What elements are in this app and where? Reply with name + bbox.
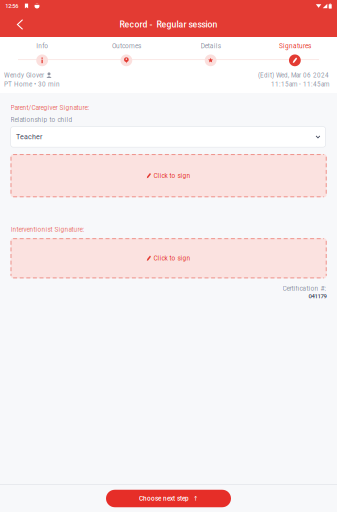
staticText: Signatures [279, 42, 311, 50]
staticText: Info [36, 42, 48, 50]
staticText: PT Home • 30 min [4, 81, 60, 88]
staticText: Wendy Glover [4, 72, 44, 79]
button[interactable]: Back [9, 12, 31, 37]
button[interactable]: Click to sign [11, 238, 327, 278]
button[interactable]: Signatures [279, 42, 311, 66]
staticText: 12:56 [5, 3, 18, 9]
staticText: 11:15am - 11:45am [271, 81, 329, 88]
staticText: Choose next step ↑ [139, 495, 198, 502]
staticText: Parent/Caregiver Signature: [11, 104, 90, 111]
button[interactable]: Teacher [11, 127, 326, 147]
button[interactable]: Details [201, 42, 221, 66]
staticText: Record - Regular session [119, 19, 217, 30]
staticText: Details [201, 42, 221, 50]
button[interactable]: Click to sign [11, 154, 327, 197]
button[interactable]: Choose next step ↑ [106, 490, 231, 507]
staticText: 041179 [309, 293, 327, 300]
staticText: Certification #: [283, 285, 327, 292]
staticText: Click to sign [153, 255, 190, 262]
staticText: Teacher [16, 133, 42, 141]
staticText: (Edit) Wed, Mar 06 2024 [258, 72, 329, 79]
staticText: Interventionist Signature: [11, 226, 85, 233]
staticText: Relationship to child [11, 116, 73, 123]
staticText: Click to sign [153, 172, 190, 179]
button[interactable]: Outcomes [112, 42, 141, 66]
button[interactable]: Info [36, 42, 48, 66]
staticText: Outcomes [112, 42, 141, 50]
